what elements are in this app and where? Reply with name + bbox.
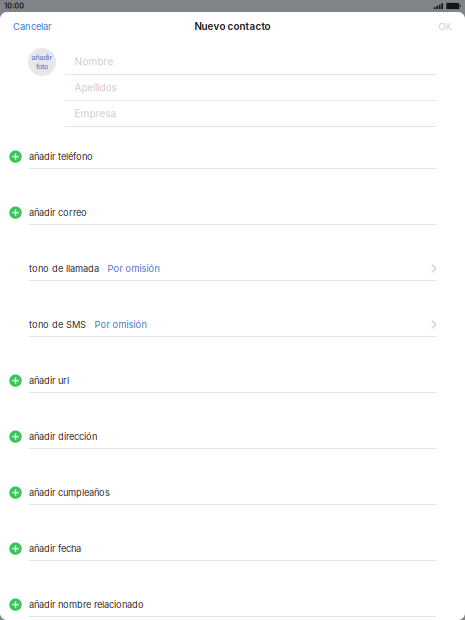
staticText: Cancelar bbox=[13, 21, 52, 32]
button[interactable]: Empresa bbox=[0, 101, 465, 127]
staticText: añadir bbox=[31, 53, 52, 62]
button[interactable]: añadir cumpleaños bbox=[0, 481, 465, 537]
button[interactable]: añadir nombre relacionado bbox=[0, 593, 465, 620]
staticText: tono de SMS bbox=[29, 319, 86, 330]
button[interactable]: añadir teléfono bbox=[0, 145, 465, 201]
staticText: añadir cumpleaños bbox=[29, 487, 110, 498]
staticText: OK bbox=[438, 21, 451, 32]
button[interactable]: Cancelar bbox=[0, 14, 62, 38]
button[interactable]: Añadir foto bbox=[28, 48, 56, 76]
button[interactable]: añadir url bbox=[0, 369, 465, 425]
button[interactable]: añadir correo bbox=[0, 201, 465, 257]
staticText: Por omisión bbox=[95, 319, 147, 330]
staticText: tono de llamada bbox=[29, 263, 99, 274]
button[interactable]: añadir fecha bbox=[0, 537, 465, 593]
staticText: Empresa bbox=[74, 107, 116, 120]
staticText: añadir nombre relacionado bbox=[29, 599, 144, 610]
button[interactable]: OK bbox=[428, 14, 465, 38]
button[interactable]: Nombre bbox=[0, 49, 465, 75]
button[interactable]: añadir dirección bbox=[0, 425, 465, 481]
staticText: 10:00 bbox=[4, 2, 24, 10]
staticText: añadir teléfono bbox=[29, 151, 93, 162]
staticText: Apellidos bbox=[74, 81, 116, 94]
staticText: Nombre bbox=[74, 55, 113, 68]
button[interactable]: tono de llamada bbox=[0, 257, 465, 313]
staticText: añadir dirección bbox=[29, 431, 97, 442]
staticText: añadir correo bbox=[29, 207, 87, 218]
staticText: añadir url bbox=[29, 375, 69, 386]
staticText: Nuevo contacto bbox=[194, 20, 270, 32]
staticText: Por omisión bbox=[108, 263, 160, 274]
button[interactable]: tono de SMS bbox=[0, 313, 465, 369]
staticText: añadir fecha bbox=[29, 543, 81, 554]
button[interactable]: Apellidos bbox=[0, 75, 465, 101]
staticText: foto bbox=[36, 62, 48, 71]
